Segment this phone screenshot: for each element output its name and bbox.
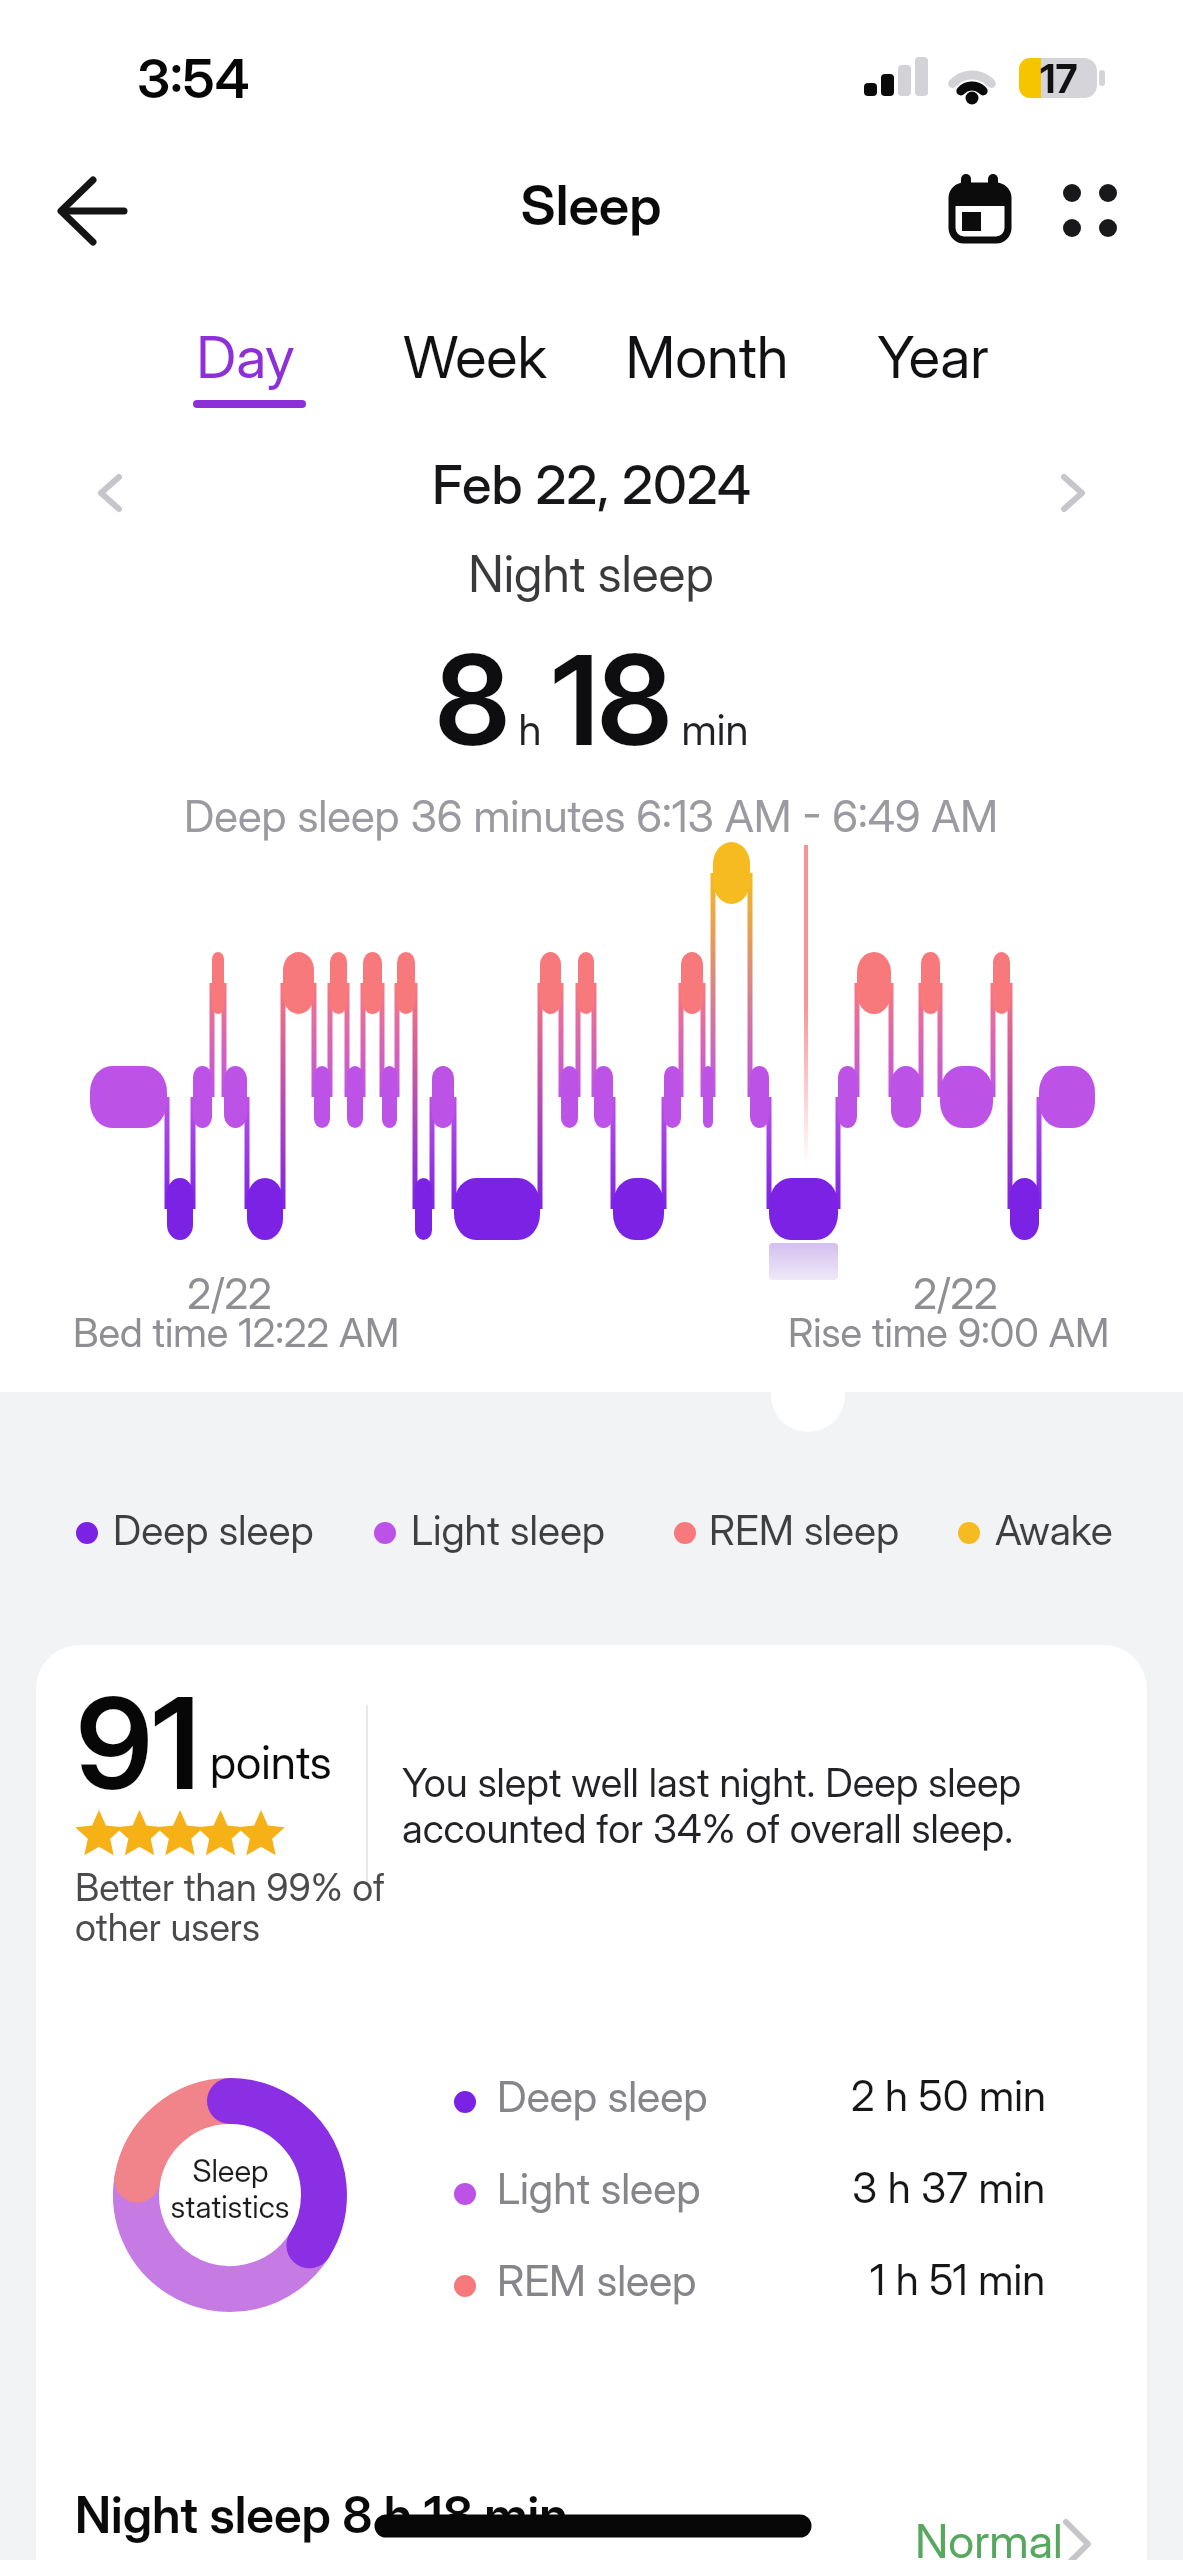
- button[interactable]: Year: [818, 315, 1048, 415]
- staticText: Night sleep: [468, 544, 714, 604]
- staticText: 2 h 50 min: [851, 2070, 1046, 2121]
- staticText: min: [671, 704, 749, 755]
- button[interactable]: [1048, 175, 1128, 245]
- staticText: points: [210, 1734, 332, 1790]
- button[interactable]: 91: [36, 1645, 1147, 2560]
- button[interactable]: Month: [592, 315, 822, 415]
- staticText: 2/22: [187, 1268, 272, 1319]
- staticText: 2/22: [913, 1268, 998, 1319]
- staticText: Light sleep: [497, 2162, 701, 2214]
- staticText: 3 h 37 min: [852, 2162, 1046, 2213]
- button[interactable]: [1023, 455, 1113, 535]
- staticText: Month: [625, 322, 789, 392]
- staticText: Bed time 12:22 AM: [73, 1308, 400, 1356]
- button[interactable]: Day: [130, 315, 360, 415]
- staticText: 1 h 51 min: [870, 2254, 1046, 2305]
- button[interactable]: [70, 455, 160, 535]
- staticText: Day: [196, 322, 295, 392]
- staticText: Sleep: [520, 172, 662, 239]
- staticText: Light sleep: [411, 1505, 606, 1555]
- staticText: Feb 22, 2024: [432, 452, 751, 517]
- staticText: Deep sleep: [113, 1505, 314, 1555]
- staticText: Normal: [915, 2512, 1063, 2560]
- staticText: statistics: [170, 2188, 290, 2226]
- staticText: Night sleep 8 h 18 min: [75, 2485, 568, 2545]
- button[interactable]: [40, 180, 140, 244]
- staticText: Rise time 9:00 AM: [788, 1308, 1110, 1356]
- staticText: REM sleep: [709, 1505, 900, 1555]
- staticText: Year: [877, 322, 989, 392]
- staticText: 91: [76, 1667, 201, 1819]
- staticText: Better than 99% of: [75, 1864, 385, 1910]
- staticText: other users: [75, 1904, 261, 1950]
- button[interactable]: Week: [360, 315, 590, 415]
- staticText: 3:54: [137, 46, 250, 111]
- staticText: accounted for 34% of overall sleep.: [402, 1804, 1013, 1852]
- staticText: 17: [1040, 54, 1078, 102]
- staticText: 8: [435, 625, 508, 775]
- staticText: Deep sleep: [497, 2070, 708, 2122]
- staticText: Awake: [995, 1505, 1113, 1555]
- button[interactable]: [940, 168, 1018, 248]
- staticText: Week: [403, 322, 547, 392]
- staticText: 18: [552, 625, 671, 775]
- staticText: REM sleep: [497, 2254, 697, 2306]
- staticText: h: [508, 704, 552, 755]
- staticText: Deep sleep 36 minutes 6:13 AM - 6:49 AM: [184, 789, 998, 842]
- button[interactable]: Night sleep 8 h 18 min: [36, 2475, 1147, 2560]
- staticText: Sleep: [192, 2152, 269, 2190]
- staticText: You slept well last night. Deep sleep: [402, 1758, 1022, 1806]
